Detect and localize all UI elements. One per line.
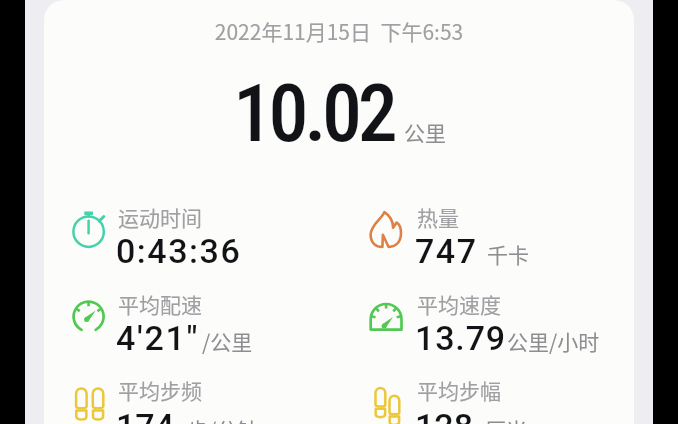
other: Average pace — [71, 300, 109, 340]
button[interactable] — [362, 379, 634, 424]
staticText: 公里 — [404, 117, 446, 147]
staticText: 千卡 — [487, 239, 529, 269]
staticText: 平均速度 — [417, 289, 501, 319]
staticText: 平均配速 — [118, 289, 202, 319]
button[interactable] — [362, 292, 634, 368]
staticText: 厘米 — [485, 414, 527, 424]
other: Calories burned — [368, 211, 406, 251]
other: Exercise duration — [71, 211, 109, 251]
button[interactable] — [362, 203, 634, 279]
staticText: 2022年11月15日 下午6:53 — [44, 16, 634, 46]
staticText: 13.79 — [415, 318, 506, 358]
button[interactable] — [65, 203, 337, 279]
staticText: 128 — [415, 406, 473, 424]
staticText: 热量 — [417, 202, 459, 232]
staticText: 747 — [415, 231, 478, 271]
button[interactable] — [65, 379, 337, 424]
button[interactable] — [65, 292, 337, 368]
other: Average cadence — [71, 387, 109, 424]
staticText: 公里/小时 — [507, 326, 600, 356]
staticText: 0:43:36 — [116, 231, 242, 271]
staticText: 174 — [116, 406, 174, 424]
staticText: 4'21" — [116, 318, 200, 358]
staticText: 平均步幅 — [417, 375, 501, 405]
staticText: 运动时间 — [118, 202, 202, 232]
staticText: 平均步频 — [118, 375, 202, 405]
other: Average stride — [368, 387, 406, 424]
staticText: 10.02 — [233, 67, 394, 161]
staticText: 步/分钟 — [187, 414, 259, 424]
other: Average speed — [368, 300, 406, 340]
staticText: /公里 — [202, 326, 253, 356]
